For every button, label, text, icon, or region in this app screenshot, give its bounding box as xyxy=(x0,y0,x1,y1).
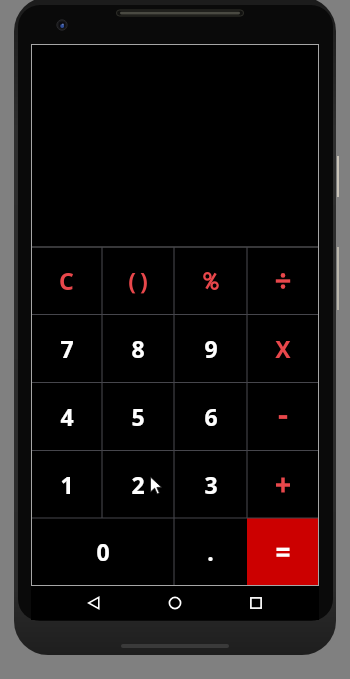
button[interactable]: 5 xyxy=(102,383,174,451)
button[interactable]: 1 xyxy=(31,451,102,519)
button[interactable]: Percent xyxy=(174,247,247,315)
button[interactable]: C xyxy=(31,247,102,315)
staticText: 1 xyxy=(60,469,74,500)
staticText: 7 xyxy=(60,333,74,364)
staticText: 5 xyxy=(131,401,145,432)
staticText: 6 xyxy=(204,401,218,432)
button[interactable]: 9 xyxy=(174,315,247,383)
button[interactable]: Divide xyxy=(247,247,319,315)
button[interactable]: 0 xyxy=(31,518,174,586)
button[interactable]: 3 xyxy=(174,451,247,519)
button[interactable]: 2 xyxy=(102,451,174,519)
button[interactable]: Recent apps xyxy=(234,586,278,620)
button[interactable]: 4 xyxy=(31,383,102,451)
staticText: 3 xyxy=(204,469,218,500)
staticText: 0 xyxy=(96,536,110,567)
button[interactable]: Equals xyxy=(247,518,319,586)
button[interactable]: Plus xyxy=(247,451,319,519)
button[interactable]: Minus xyxy=(247,383,319,451)
button[interactable]: X xyxy=(247,315,319,383)
staticText: 4 xyxy=(60,401,74,432)
staticText: . xyxy=(207,536,214,567)
staticText: X xyxy=(275,333,291,364)
staticText: ( ) xyxy=(128,265,148,296)
button[interactable]: Back xyxy=(72,586,116,620)
staticText: 8 xyxy=(131,333,145,364)
staticText: 9 xyxy=(204,333,218,364)
staticText: 2 xyxy=(131,469,145,500)
button[interactable]: Display xyxy=(31,44,319,247)
button[interactable]: 8 xyxy=(102,315,174,383)
button[interactable]: ( ) xyxy=(102,247,174,315)
button[interactable]: 7 xyxy=(31,315,102,383)
button[interactable]: Home xyxy=(153,586,197,620)
staticText: C xyxy=(59,265,74,296)
button[interactable]: . xyxy=(174,518,247,586)
button[interactable]: 6 xyxy=(174,383,247,451)
